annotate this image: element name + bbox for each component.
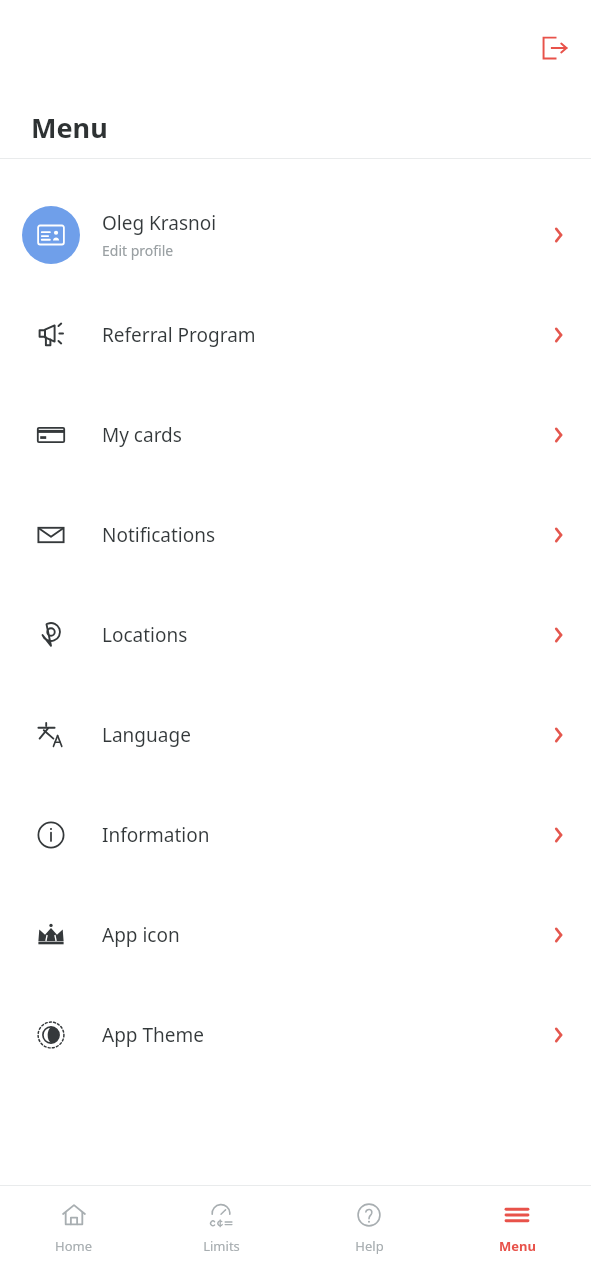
staticText: Home	[55, 1237, 92, 1255]
staticText: Menu	[499, 1237, 536, 1255]
staticText: Language	[102, 722, 191, 748]
staticText: Limits	[203, 1237, 240, 1255]
button[interactable]: Notifications	[0, 485, 591, 585]
staticText: Edit profile	[102, 241, 174, 260]
staticText: Locations	[102, 622, 188, 648]
button[interactable]: App icon	[0, 885, 591, 985]
staticText: Help	[355, 1237, 384, 1255]
button[interactable]: Limits	[147, 1186, 295, 1255]
button[interactable]: App Theme	[0, 985, 591, 1085]
staticText: Information	[102, 822, 210, 848]
button[interactable]: Home	[0, 1186, 147, 1255]
button[interactable]: My cards	[0, 385, 591, 485]
staticText: Notifications	[102, 522, 216, 548]
staticText: App Theme	[102, 1022, 204, 1048]
staticText: Menu	[31, 109, 108, 146]
button[interactable]: Oleg Krasnoi	[0, 185, 591, 285]
button[interactable]: Referral Program	[0, 285, 591, 385]
button[interactable]: Log out	[531, 24, 579, 72]
button[interactable]: Information	[0, 785, 591, 885]
button[interactable]: Menu	[443, 1186, 591, 1255]
staticText: My cards	[102, 422, 182, 448]
button[interactable]: Locations	[0, 585, 591, 685]
button[interactable]: Language	[0, 685, 591, 785]
staticText: Referral Program	[102, 322, 256, 348]
button[interactable]: Help	[295, 1186, 443, 1255]
staticText: App icon	[102, 922, 180, 948]
staticText: Oleg Krasnoi	[102, 210, 217, 236]
